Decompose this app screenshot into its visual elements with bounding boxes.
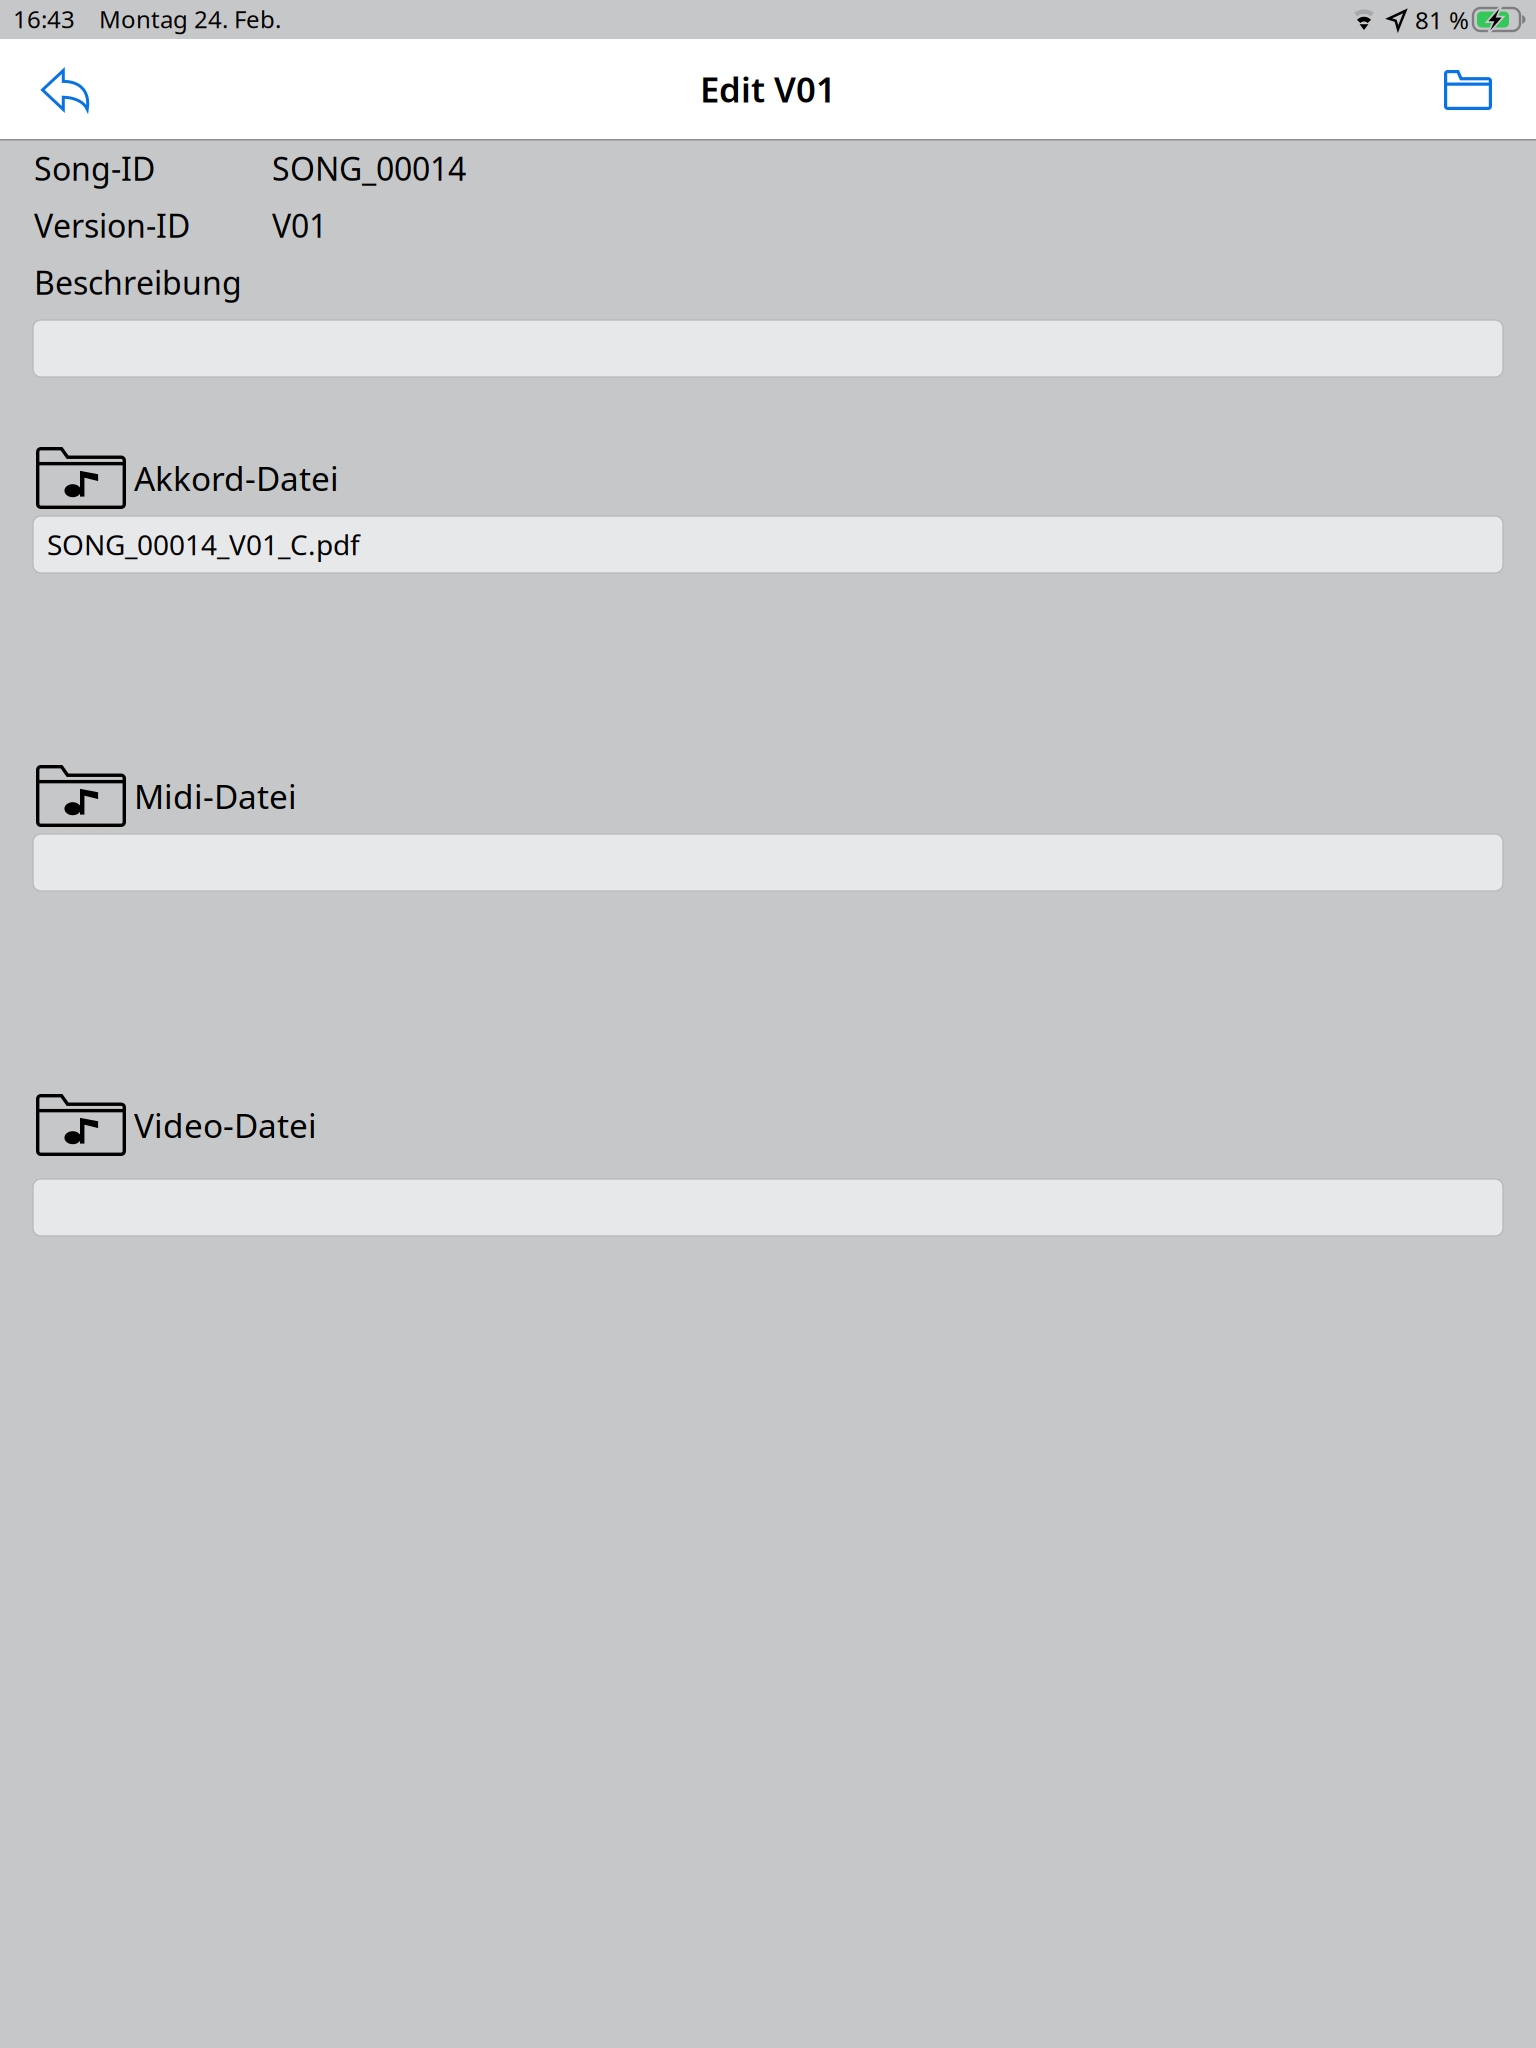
staticText: Edit V01: [700, 66, 836, 112]
staticText: Beschreibung: [34, 261, 242, 303]
staticText: Version-ID: [34, 204, 190, 246]
staticText: Song-ID: [34, 147, 155, 189]
button[interactable]: Midi-Datei: [33, 834, 1503, 891]
button[interactable]: Beschreibung: [33, 320, 1503, 377]
button[interactable]: Open folder: [1422, 50, 1514, 130]
staticText: 16:43: [13, 3, 75, 35]
staticText: SONG_00014_V01_C.pdf: [47, 526, 360, 563]
staticText: Midi-Datei: [134, 774, 297, 818]
staticText: V01: [272, 204, 327, 246]
staticText: Video-Datei: [134, 1103, 317, 1147]
staticText: Akkord-Datei: [134, 456, 339, 500]
button[interactable]: Back: [19, 50, 111, 130]
staticText: SONG_00014: [272, 147, 466, 189]
button[interactable]: Video-Datei: [36, 1094, 536, 1156]
button[interactable]: Midi-Datei: [36, 765, 536, 827]
staticText: 81 %: [1415, 4, 1469, 36]
button[interactable]: Video-Datei: [33, 1179, 1503, 1236]
button[interactable]: Akkord-Datei: [36, 447, 536, 509]
button[interactable]: Akkord-Datei: [33, 516, 1503, 573]
staticText: Montag 24. Feb.: [99, 3, 281, 35]
